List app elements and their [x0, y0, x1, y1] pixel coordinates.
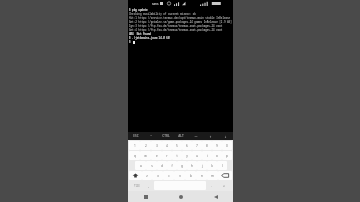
staticText: b — [190, 174, 192, 178]
button[interactable]: c — [163, 171, 174, 180]
button[interactable]: p — [222, 151, 232, 160]
button[interactable]: 3 — [151, 141, 162, 150]
staticText: ~ — [150, 134, 152, 138]
button[interactable]: 5 — [172, 141, 182, 150]
staticText: $ pkg update — [129, 8, 148, 12]
staticText: m — [211, 174, 214, 178]
button[interactable]: x — [152, 171, 163, 180]
staticText: r — [166, 154, 168, 158]
staticText: ↑ — [209, 135, 212, 138]
button[interactable]: e — [151, 151, 162, 160]
button[interactable]: 8 — [202, 141, 212, 150]
staticText: 2 — [145, 144, 147, 148]
button[interactable]: a — [135, 161, 146, 170]
button[interactable]: Shift — [129, 171, 142, 180]
button[interactable]: l — [217, 161, 227, 170]
button[interactable]: ALT — [173, 132, 188, 140]
button[interactable]: w — [140, 151, 151, 160]
staticText: ESC — [133, 134, 139, 138]
button[interactable]: CTRL — [158, 132, 173, 140]
staticText: sans — [152, 2, 159, 6]
staticText: v — [179, 174, 181, 178]
button[interactable]: ?123 — [129, 181, 144, 190]
staticText: 1 — [134, 144, 136, 148]
staticText: 8 — [206, 144, 208, 148]
staticText: 6 — [186, 144, 188, 148]
staticText: g — [181, 164, 183, 168]
staticText: $ ./jetbrains-java:14.0 60 — [129, 36, 170, 40]
staticText: 404 Not Found — [129, 32, 151, 36]
button[interactable]: 2 — [140, 141, 151, 150]
staticText: ALT — [178, 134, 184, 138]
button[interactable]: 7 — [192, 141, 202, 150]
button[interactable]: z — [142, 171, 152, 180]
button[interactable]: — — [188, 132, 203, 140]
button[interactable]: v — [174, 171, 185, 180]
staticText: d — [161, 164, 163, 168]
staticText: 7 — [196, 144, 198, 148]
button[interactable]: Enter — [216, 181, 232, 190]
button[interactable]: ~ — [143, 132, 158, 140]
button[interactable]: y — [182, 151, 192, 160]
button[interactable]: Back — [198, 191, 233, 202]
button[interactable]: 0 — [222, 141, 232, 150]
button[interactable]: g — [177, 161, 187, 170]
button[interactable]: 1 — [129, 141, 140, 150]
button[interactable]: q — [129, 151, 140, 160]
button[interactable]: u — [192, 151, 202, 160]
button[interactable]: Recents — [128, 191, 163, 202]
staticText: Hit:1 https://service.termux.dev/apt/ter… — [129, 16, 231, 20]
staticText: — — [194, 134, 198, 138]
staticText: y — [186, 154, 188, 158]
button[interactable]: i — [202, 151, 212, 160]
staticText: s — [151, 164, 153, 168]
staticText: . — [211, 184, 212, 188]
staticText: i — [207, 154, 208, 158]
staticText: q — [134, 154, 136, 158]
button[interactable]: Home — [163, 191, 198, 202]
staticText: , — [148, 184, 149, 188]
button[interactable]: Backspace — [218, 171, 232, 180]
staticText: t — [176, 154, 178, 158]
button[interactable]: b — [185, 171, 196, 180]
button[interactable]: 4 — [162, 141, 172, 150]
button[interactable]: ↓ — [218, 132, 233, 140]
button[interactable]: r — [162, 151, 172, 160]
button[interactable]: 6 — [182, 141, 192, 150]
staticText: a — [140, 164, 142, 168]
button[interactable]: d — [157, 161, 167, 170]
staticText: Ign:3 https://ftp.fau.de/termux/termux-r… — [129, 24, 232, 28]
staticText: l — [222, 164, 223, 168]
button[interactable]: ↑ — [203, 132, 218, 140]
staticText: x — [157, 174, 159, 178]
staticText: 0 — [226, 144, 228, 148]
button[interactable]: s — [146, 161, 157, 170]
staticText: $ — [129, 40, 133, 44]
button[interactable]: f — [167, 161, 177, 170]
button[interactable]: h — [187, 161, 197, 170]
button[interactable]: k — [207, 161, 217, 170]
button[interactable]: t — [172, 151, 182, 160]
staticText: 5 — [176, 144, 178, 148]
staticText: 9 — [216, 144, 218, 148]
button[interactable]: o — [212, 151, 222, 160]
button[interactable]: ESC — [128, 132, 143, 140]
staticText: Get:2 https://grimler.se/game-packages-2… — [129, 20, 232, 24]
button[interactable]: n — [196, 171, 207, 180]
button[interactable]: , — [144, 181, 153, 190]
button[interactable]: m — [207, 171, 218, 180]
staticText: f — [171, 164, 173, 168]
button[interactable]: j — [197, 161, 207, 170]
staticText: j — [202, 164, 203, 168]
staticText: c — [168, 174, 170, 178]
staticText: Checking availability of current mirror:… — [129, 12, 196, 16]
staticText: Get:4 https://ftp.fau.de/termux/termux-r… — [129, 28, 232, 32]
staticText: ↓ — [224, 135, 227, 138]
staticText: k — [211, 164, 213, 168]
button[interactable]: 9 — [212, 141, 222, 150]
staticText: w — [144, 154, 147, 158]
staticText: p — [226, 154, 228, 158]
staticText: e — [156, 154, 158, 158]
